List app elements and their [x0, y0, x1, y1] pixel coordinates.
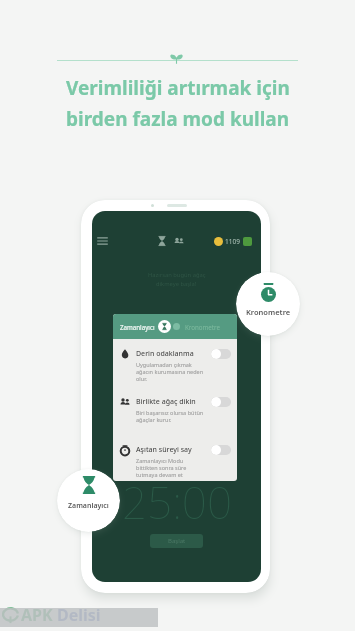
staticText: Verimliliği artırmak için: [66, 75, 290, 101]
staticText: bittikten sonra süre: [136, 464, 187, 471]
staticText: Birlikte ağaç dikin: [136, 397, 196, 407]
button[interactable]: Derin odaklanma: [120, 349, 231, 382]
button[interactable]: Menu: [97, 237, 108, 245]
staticText: 1109: [225, 237, 240, 246]
button[interactable]: Zamanlayıcı: [120, 323, 155, 331]
staticText: Aşıtan süreyi say: [136, 445, 192, 455]
button[interactable]: Başlat: [150, 534, 203, 548]
staticText: ağacın kurumasına neden: [136, 368, 204, 375]
button[interactable]: Aşıtan süreyi say: [120, 445, 231, 478]
button[interactable]: Birlikte ağaç dikin: [120, 397, 231, 423]
staticText: 25:00: [122, 472, 232, 532]
button[interactable]: [211, 349, 231, 359]
staticText: Delisi: [57, 604, 101, 626]
staticText: Kronometre: [246, 307, 291, 317]
staticText: Zamanlayıcı: [68, 501, 109, 511]
staticText: tutmaya devam et: [136, 471, 183, 478]
button[interactable]: [211, 445, 231, 455]
staticText: Zamanlayıcı Modu: [136, 457, 184, 464]
staticText: Başlat: [168, 537, 186, 545]
staticText: Kronometre: [185, 323, 221, 331]
staticText: Uygulamadan çıkmak: [136, 361, 192, 368]
button[interactable]: Timer mode: [158, 236, 166, 246]
button[interactable]: [211, 397, 231, 407]
staticText: olur.: [136, 375, 148, 382]
staticText: ağaçlar kurur.: [136, 416, 172, 423]
staticText: Zamanlayıcı: [120, 323, 155, 331]
button[interactable]: Kronometre: [236, 272, 300, 336]
staticText: birden fazla mod kullan: [66, 106, 290, 132]
button[interactable]: Friends: [174, 237, 184, 245]
staticText: APK: [21, 604, 53, 626]
staticText: dikmeye başla!: [156, 280, 197, 288]
staticText: Hazırsan bugün ağaç: [148, 271, 206, 279]
staticText: Derin odaklanma: [136, 349, 194, 359]
button[interactable]: Kronometre: [185, 323, 221, 331]
button[interactable]: Zamanlayıcı: [57, 469, 120, 532]
staticText: Biri başarısız olursa bütün: [136, 409, 204, 416]
